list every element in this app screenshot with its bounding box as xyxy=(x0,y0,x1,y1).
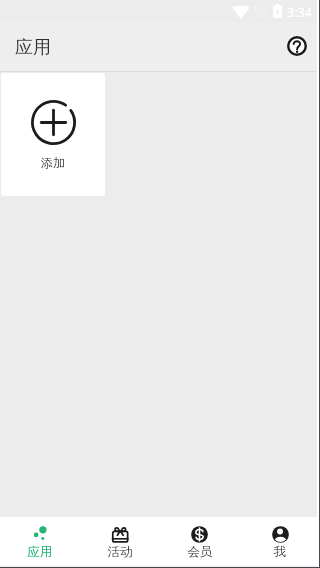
staticText: 活动 xyxy=(80,544,160,560)
staticText: 应用 xyxy=(0,544,80,560)
button[interactable]: 我 xyxy=(240,517,320,566)
button[interactable]: 添加 xyxy=(1,73,105,196)
staticText: 添加 xyxy=(1,155,105,170)
button[interactable]: 活动 xyxy=(80,517,160,566)
staticText: 应用 xyxy=(15,36,51,59)
button[interactable]: 应用 xyxy=(0,517,80,566)
staticText: 会员 xyxy=(160,544,240,560)
button[interactable]: 会员 xyxy=(160,517,240,566)
staticText: 3:34 xyxy=(287,4,312,21)
button[interactable]: Help xyxy=(280,29,314,63)
staticText: 我 xyxy=(240,544,320,560)
